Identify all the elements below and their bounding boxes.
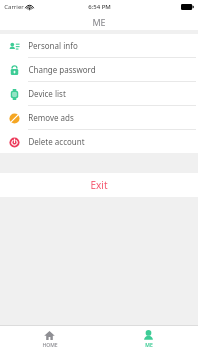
button[interactable]: Exit — [0, 173, 198, 197]
staticText: Delete account — [28, 136, 85, 147]
staticText: Exit — [90, 178, 108, 192]
button[interactable]: Remove ads — [0, 106, 198, 130]
button[interactable]: HOME — [0, 326, 99, 352]
button[interactable]: Personal info — [0, 34, 198, 58]
staticText: Personal info — [28, 40, 78, 51]
button[interactable]: ME — [99, 326, 198, 352]
staticText: HOME — [42, 342, 58, 349]
staticText: ME — [145, 342, 153, 349]
staticText: Device list — [28, 88, 66, 99]
staticText: Change password — [28, 64, 96, 75]
staticText: 6:54 PM — [88, 3, 111, 11]
button[interactable]: Change password — [0, 58, 198, 82]
staticText: Remove ads — [28, 112, 74, 123]
button[interactable]: Device list — [0, 82, 198, 106]
button[interactable]: Delete account — [0, 130, 198, 153]
staticText: ME — [92, 16, 106, 28]
staticText: Carrier — [4, 3, 24, 11]
